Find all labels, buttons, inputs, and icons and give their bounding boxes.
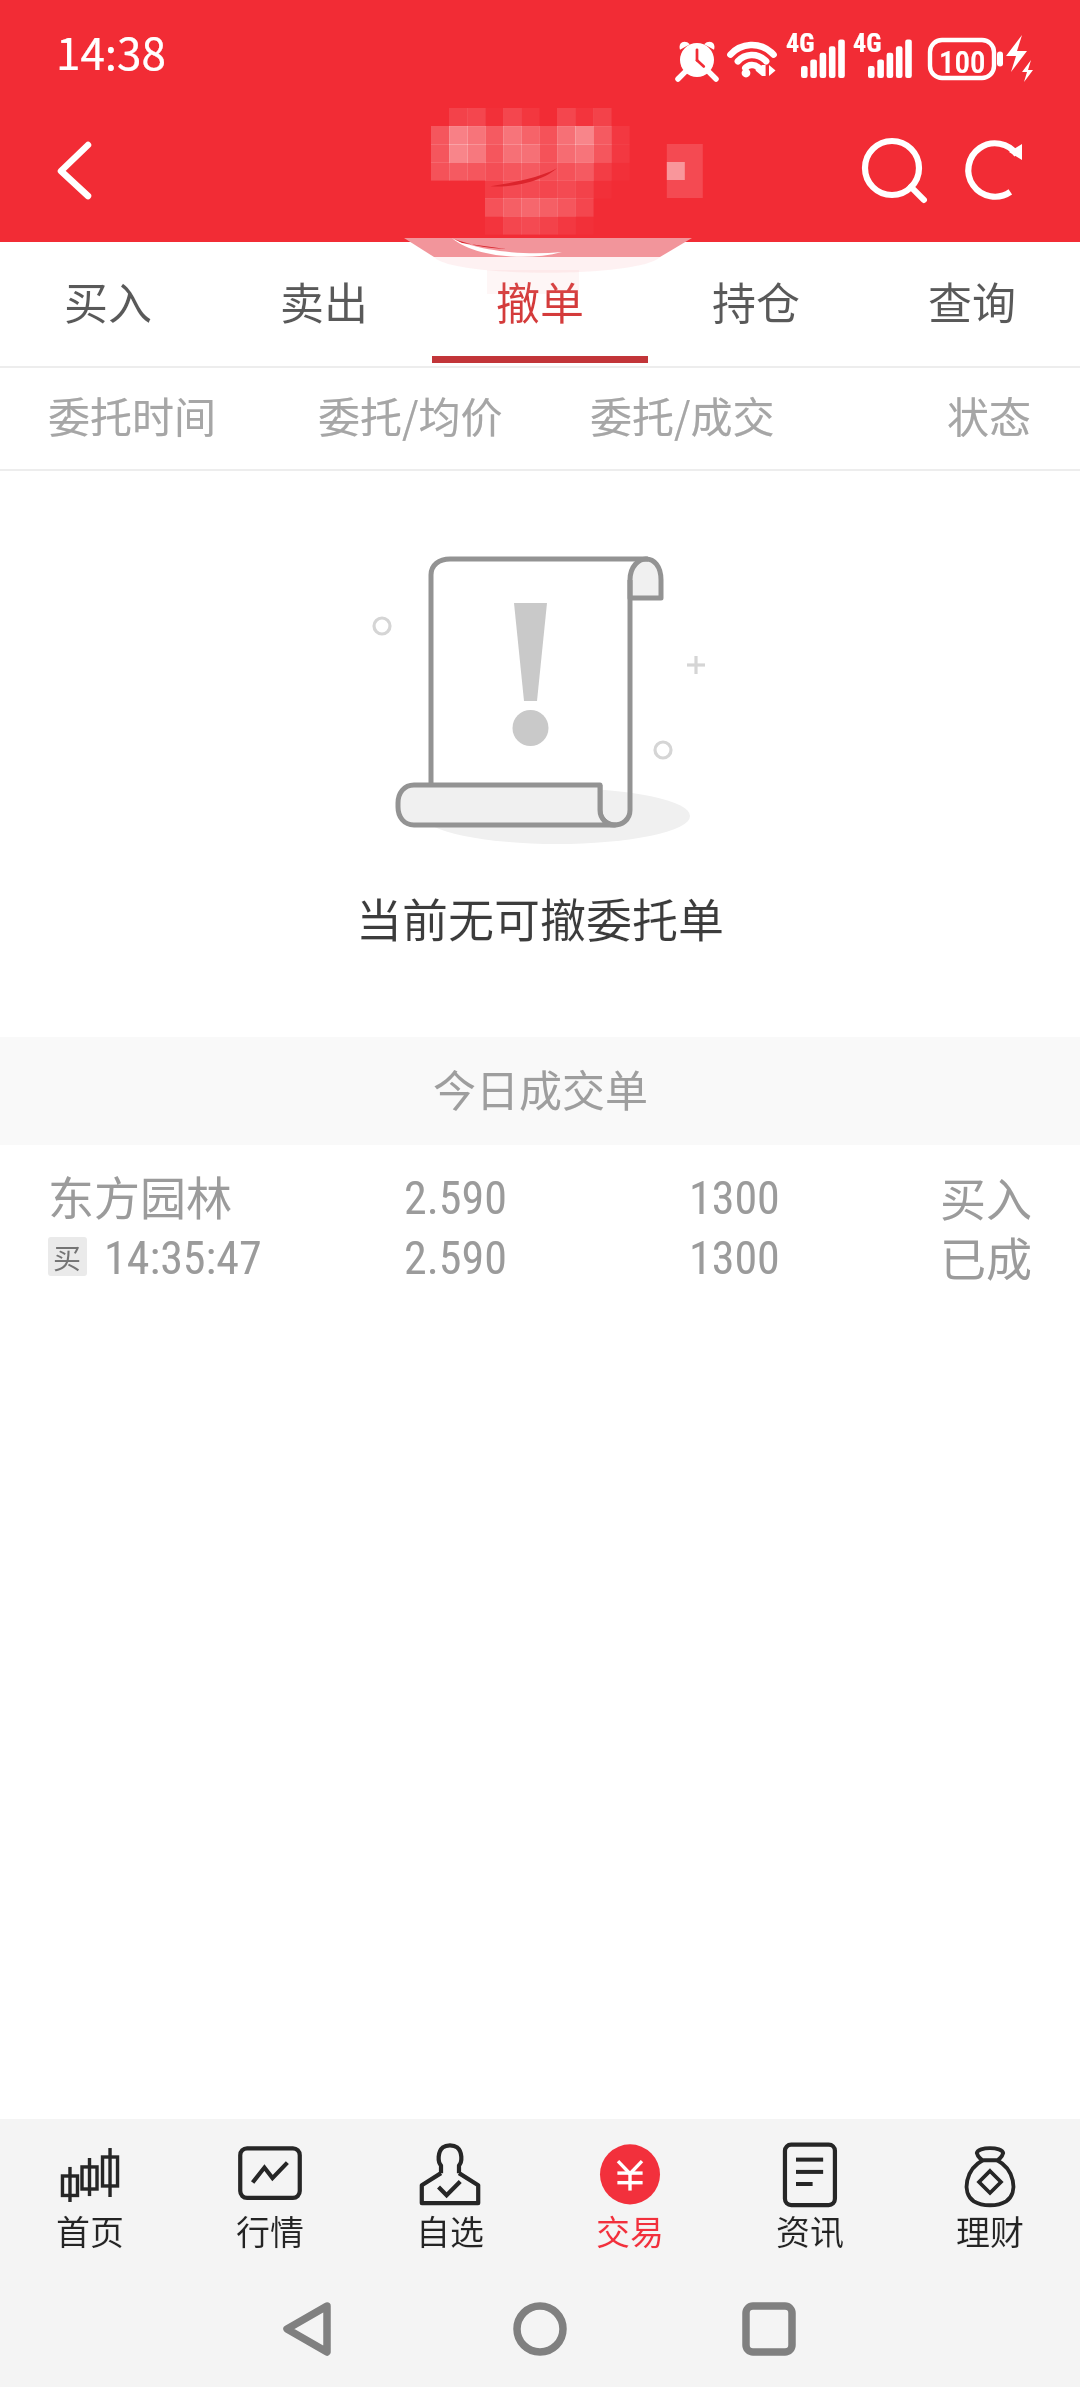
- staticText: 2.590: [404, 1231, 507, 1285]
- staticText: 14:35:47: [104, 1231, 262, 1285]
- staticText: 当前无可撤委托单: [356, 884, 724, 951]
- staticText: 委托/成交: [590, 384, 775, 445]
- staticText: 委托/均价: [318, 384, 503, 445]
- button[interactable]: 行情: [180, 2119, 360, 2270]
- staticText: 2.590: [404, 1171, 507, 1225]
- staticText: 已成: [940, 1223, 1032, 1290]
- staticText: 委托时间: [48, 384, 217, 445]
- staticText: 状态: [947, 384, 1032, 445]
- staticText: 1300: [689, 1171, 780, 1225]
- staticText: 4G: [786, 28, 815, 58]
- button[interactable]: Home: [480, 2270, 600, 2387]
- staticText: 交易: [596, 2206, 664, 2255]
- staticText: 东方园林: [48, 1162, 232, 1229]
- button[interactable]: Refresh: [944, 116, 1048, 220]
- button[interactable]: 自选: [360, 2119, 540, 2270]
- button[interactable]: 卖出: [216, 242, 432, 368]
- button[interactable]: Search: [840, 116, 944, 220]
- staticText: 查询: [928, 269, 1016, 333]
- staticText: 4G: [853, 28, 882, 58]
- button[interactable]: 买入: [0, 242, 216, 368]
- staticText: 14:38: [56, 19, 166, 83]
- button[interactable]: Back: [22, 97, 126, 201]
- staticText: 自选: [416, 2206, 484, 2255]
- staticText: 行情: [236, 2206, 304, 2255]
- staticText: 买: [53, 1237, 82, 1276]
- button[interactable]: 资讯: [720, 2119, 900, 2270]
- staticText: 卖出: [280, 269, 368, 333]
- button[interactable]: Recents: [709, 2270, 829, 2387]
- staticText: 100: [939, 44, 986, 80]
- button[interactable]: 查询: [864, 242, 1080, 368]
- staticText: 撤单: [496, 269, 584, 333]
- button[interactable]: 东方园林: [0, 1145, 1080, 1310]
- staticText: 持仓: [712, 269, 800, 333]
- button[interactable]: Back: [249, 2270, 369, 2387]
- staticText: 买入: [64, 269, 152, 333]
- button[interactable]: 撤单: [432, 242, 648, 368]
- button[interactable]: 交易: [540, 2119, 720, 2270]
- button[interactable]: 理财: [900, 2119, 1080, 2270]
- staticText: 理财: [956, 2206, 1024, 2255]
- staticText: 1300: [689, 1231, 780, 1285]
- staticText: 买入: [940, 1163, 1032, 1230]
- staticText: 今日成交单: [433, 1057, 648, 1119]
- button[interactable]: 持仓: [648, 242, 864, 368]
- button[interactable]: 首页: [0, 2119, 180, 2270]
- staticText: 资讯: [776, 2206, 844, 2255]
- staticText: 首页: [56, 2206, 124, 2255]
